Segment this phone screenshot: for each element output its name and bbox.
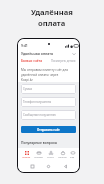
staticText: Отправить счёт [37,128,60,132]
staticText: Сообщение получателю [23,113,56,117]
staticText: Посмотреть детали [51,59,76,63]
button[interactable]: Главная [22,151,31,159]
staticText: Популярные вопросы [21,140,58,144]
staticText: удалённой оплаты через [21,73,59,77]
button[interactable]: Сообщение получателю [21,110,76,120]
button[interactable]: Недавние [30,164,35,169]
staticText: Платежи [34,156,43,159]
button[interactable]: Телефон получателя [21,97,76,107]
staticText: Услуги [47,156,54,159]
staticText: Мы отправим клиенту счёт для [21,68,69,72]
button[interactable]: Отправить счёт [21,126,76,133]
staticText: Сумма [23,87,33,91]
staticText: Телефон получателя [23,100,51,104]
button[interactable]: Сумма [21,84,76,94]
staticText: оплата [38,18,66,28]
button[interactable]: Магазин [58,151,67,159]
button[interactable]: Платежи [34,151,43,159]
button[interactable]: Назад [63,164,68,169]
staticText: Баланс счёта [21,59,42,63]
staticText: Удалённая [31,7,73,17]
button[interactable]: Развернуть [71,51,76,56]
staticText: Ещё [70,156,75,159]
button[interactable]: Услуги [47,151,54,159]
button[interactable]: Ещё [70,151,75,159]
staticText: Kaspi.kz [21,78,33,82]
staticText: 9:41 [21,43,28,48]
button[interactable]: Домой [46,164,51,169]
staticText: Магазин [58,156,67,159]
staticText: Главная [22,156,31,159]
staticText: Удалённая оплата [21,51,53,56]
